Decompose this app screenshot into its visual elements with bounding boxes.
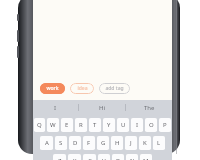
button[interactable]: Q [34, 118, 45, 132]
button[interactable]: The [126, 100, 172, 115]
staticText: Y [107, 121, 111, 129]
button[interactable]: H [111, 136, 123, 150]
button[interactable]: X [68, 154, 81, 160]
button[interactable]: B [112, 154, 124, 160]
staticText: L [157, 139, 161, 147]
button[interactable]: I [33, 100, 78, 115]
button[interactable]: Hi [79, 100, 125, 115]
button[interactable]: F [83, 136, 95, 150]
staticText: The [144, 104, 155, 112]
staticText: R [79, 121, 83, 129]
staticText: P [163, 121, 167, 129]
button[interactable]: O [145, 118, 157, 132]
button[interactable]: I [131, 118, 143, 132]
button[interactable]: Y [103, 118, 115, 132]
staticText: D [73, 139, 78, 147]
staticText: G [101, 139, 106, 147]
staticText: work [46, 85, 59, 92]
staticText: Q [37, 121, 42, 129]
staticText: C [88, 157, 92, 160]
staticText: N [130, 157, 135, 160]
button[interactable]: K [139, 136, 151, 150]
staticText: add tag [105, 85, 124, 92]
staticText: I [54, 104, 57, 112]
staticText: U [121, 121, 126, 129]
button[interactable]: L [153, 136, 165, 150]
button[interactable]: G [97, 136, 109, 150]
staticText: Z [58, 157, 62, 160]
button[interactable]: R [75, 118, 87, 132]
staticText: O [149, 121, 154, 129]
button[interactable]: A [40, 136, 53, 150]
staticText: V [102, 157, 106, 160]
button[interactable]: Z [53, 154, 66, 160]
button[interactable]: E [61, 118, 73, 132]
button[interactable]: idea [70, 83, 94, 94]
button[interactable]: T [89, 118, 101, 132]
button[interactable]: P [159, 118, 171, 132]
staticText: E [65, 121, 69, 129]
button[interactable]: C [83, 154, 96, 160]
staticText: B [116, 157, 120, 160]
staticText: F [87, 139, 91, 147]
staticText: idea [77, 85, 88, 92]
button[interactable]: work [40, 83, 65, 94]
staticText: X [73, 157, 77, 160]
staticText: A [45, 139, 49, 147]
button[interactable]: U [117, 118, 129, 132]
button[interactable]: J [125, 136, 137, 150]
button[interactable]: N [126, 154, 138, 160]
staticText: K [143, 139, 147, 147]
staticText: H [115, 139, 120, 147]
staticText: M [143, 157, 149, 160]
staticText: Hi [99, 104, 105, 112]
button[interactable]: S [55, 136, 67, 150]
staticText: T [93, 121, 97, 129]
button[interactable]: add tag [99, 83, 130, 94]
button[interactable]: D [69, 136, 81, 150]
staticText: I [136, 121, 139, 129]
button[interactable]: M [140, 154, 152, 160]
button[interactable]: V [98, 154, 110, 160]
staticText: W [50, 121, 56, 129]
staticText: S [59, 139, 63, 147]
staticText: J [130, 139, 132, 147]
button[interactable]: W [47, 118, 59, 132]
